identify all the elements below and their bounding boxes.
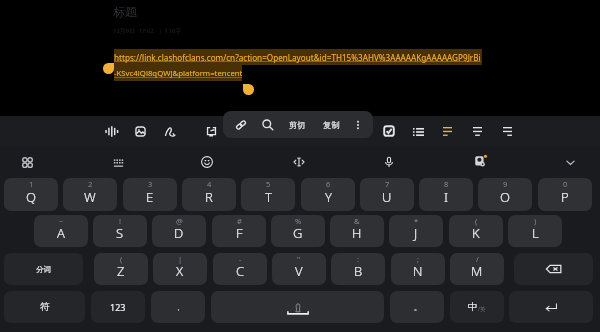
staticText: : bbox=[357, 254, 360, 264]
staticText: Q bbox=[26, 188, 36, 206]
button[interactable]: 分词 bbox=[4, 253, 83, 285]
button[interactable] bbox=[514, 253, 593, 285]
button[interactable]: 1 bbox=[4, 178, 58, 211]
button[interactable]: ) bbox=[508, 215, 562, 247]
button[interactable]: Handwriting bbox=[156, 118, 184, 144]
button[interactable]: " bbox=[272, 253, 326, 285]
button[interactable]: Keyboard layout bbox=[104, 148, 132, 176]
staticText: 12月9日 17:02 | 116字 bbox=[113, 27, 182, 35]
button[interactable]: 8 bbox=[419, 178, 473, 211]
staticText: ( bbox=[475, 216, 478, 226]
button[interactable]: 0 bbox=[538, 178, 592, 211]
button[interactable]: * bbox=[389, 215, 443, 247]
staticText: & bbox=[354, 216, 360, 226]
button[interactable]: ， bbox=[151, 291, 205, 323]
button[interactable]: 9 bbox=[478, 178, 532, 211]
staticText: https://link.clashofclans.com/cn?action=… bbox=[114, 52, 481, 63]
button[interactable]: 。 bbox=[390, 291, 444, 323]
button[interactable]: ! bbox=[93, 215, 147, 247]
button[interactable]: # bbox=[212, 215, 266, 247]
staticText: 标题 bbox=[113, 4, 137, 19]
staticText: - bbox=[239, 254, 242, 264]
staticText: 0 bbox=[563, 179, 568, 189]
staticText: 2 bbox=[88, 179, 93, 189]
staticText: Y bbox=[325, 188, 332, 206]
button[interactable]: Insert image bbox=[126, 118, 154, 144]
staticText: 1 bbox=[29, 179, 34, 189]
button[interactable]: - bbox=[213, 253, 267, 285]
staticText: S bbox=[116, 224, 124, 242]
staticText: ~ bbox=[59, 216, 64, 226]
button[interactable]: Bullet list bbox=[404, 118, 432, 144]
button[interactable]: Align right bbox=[493, 118, 521, 144]
button[interactable]: Emoji bbox=[193, 148, 221, 176]
staticText: 符 bbox=[40, 301, 50, 313]
button[interactable] bbox=[211, 291, 384, 323]
button[interactable]: 中 bbox=[450, 291, 504, 323]
button[interactable]: Checklist bbox=[375, 118, 403, 144]
staticText: ; bbox=[417, 254, 420, 264]
button[interactable]: Insert table bbox=[197, 118, 225, 144]
button[interactable]: : bbox=[331, 253, 385, 285]
staticText: C bbox=[236, 262, 245, 280]
button[interactable]: Create link bbox=[228, 112, 254, 138]
staticText: B bbox=[354, 262, 363, 280]
staticText: @ bbox=[176, 216, 183, 226]
button[interactable]: Hide keyboard bbox=[556, 148, 584, 176]
button[interactable]: 3 bbox=[123, 178, 177, 211]
staticText: N bbox=[413, 262, 423, 280]
button[interactable]: / bbox=[450, 253, 504, 285]
button[interactable]: Voice input bbox=[375, 148, 403, 176]
staticText: J bbox=[414, 224, 418, 242]
button[interactable]: Search bbox=[255, 112, 281, 138]
staticText: U bbox=[382, 188, 392, 206]
staticText: 8 bbox=[444, 179, 449, 189]
button[interactable]: Stickers bbox=[467, 148, 495, 176]
button[interactable]: 6 bbox=[301, 178, 355, 211]
button[interactable]: % bbox=[271, 215, 325, 247]
button[interactable]: More options bbox=[345, 112, 371, 138]
staticText: /英 bbox=[478, 305, 486, 313]
staticText: ( bbox=[120, 254, 123, 264]
staticText: O bbox=[500, 188, 510, 206]
button[interactable]: 复制 bbox=[315, 111, 347, 138]
staticText: 7 bbox=[385, 179, 390, 189]
staticText: F bbox=[236, 224, 243, 242]
staticText: X bbox=[176, 262, 184, 280]
staticText: # bbox=[237, 216, 242, 226]
button[interactable]: 4 bbox=[182, 178, 236, 211]
button[interactable]: ( bbox=[94, 253, 148, 285]
staticText: 4 bbox=[207, 179, 212, 189]
button[interactable]: 2 bbox=[63, 178, 117, 211]
button[interactable]: Align center bbox=[463, 118, 491, 144]
staticText: D bbox=[174, 224, 184, 242]
staticText: 剪切 bbox=[289, 120, 306, 130]
button[interactable]: ; bbox=[391, 253, 445, 285]
button[interactable]: ~ bbox=[34, 215, 88, 247]
button[interactable]: ( bbox=[449, 215, 503, 247]
staticText: R bbox=[205, 188, 213, 206]
button[interactable]: | bbox=[153, 253, 207, 285]
staticText: 123 bbox=[110, 301, 126, 313]
button[interactable]: Record audio bbox=[96, 118, 124, 144]
button[interactable]: @ bbox=[152, 215, 206, 247]
button[interactable] bbox=[509, 291, 593, 323]
staticText: 6 bbox=[326, 179, 331, 189]
staticText: W bbox=[84, 188, 96, 206]
button[interactable]: 123 bbox=[91, 291, 145, 323]
staticText: G bbox=[293, 224, 303, 242]
button[interactable]: 5 bbox=[241, 178, 295, 211]
staticText: L bbox=[532, 224, 539, 242]
button[interactable]: Keyboard apps bbox=[13, 148, 41, 176]
button[interactable]: 7 bbox=[360, 178, 414, 211]
staticText: 5 bbox=[266, 179, 271, 189]
button[interactable]: Move cursor bbox=[285, 148, 313, 176]
staticText: A bbox=[57, 224, 65, 242]
staticText: M bbox=[471, 262, 483, 280]
button[interactable]: Align left bbox=[433, 118, 461, 144]
staticText: 3 bbox=[148, 179, 153, 189]
button[interactable]: 剪切 bbox=[281, 111, 313, 138]
button[interactable]: & bbox=[330, 215, 384, 247]
button[interactable]: 符 bbox=[4, 291, 85, 323]
staticText: I bbox=[444, 188, 449, 206]
